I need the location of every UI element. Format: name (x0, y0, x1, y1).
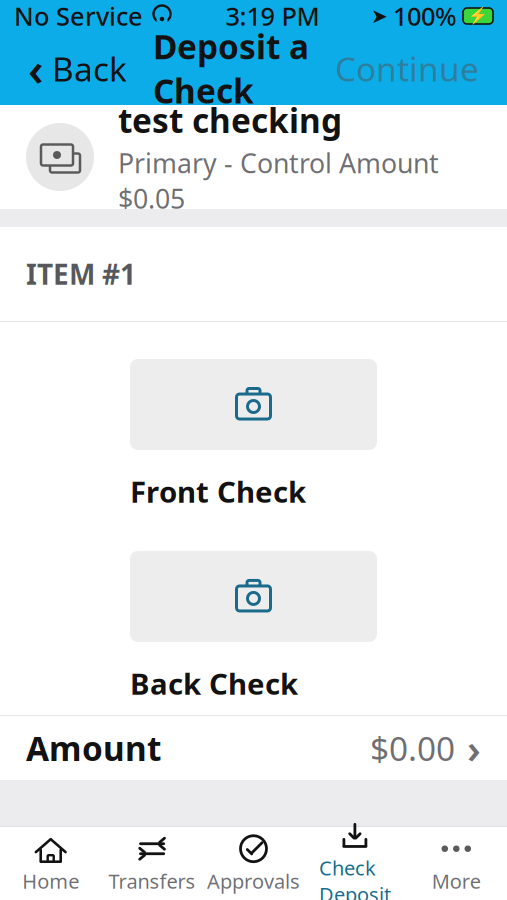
staticText: Deposit a Check (153, 24, 309, 113)
button[interactable]: Home (0, 827, 101, 900)
staticText: test checking (118, 98, 342, 142)
button[interactable]: Amount (0, 716, 507, 780)
staticText: ⚡ (468, 7, 488, 25)
staticText: Home (22, 868, 79, 894)
staticText: No Service (14, 0, 143, 33)
staticText: Back (52, 46, 127, 91)
staticText: Primary - Control Amount $0.05 (118, 145, 439, 216)
button[interactable]: More (406, 827, 507, 900)
staticText: Approvals (207, 868, 300, 894)
staticText: › (467, 721, 481, 774)
staticText: Continue (335, 46, 479, 91)
staticText: ‹ (28, 38, 44, 99)
button[interactable]: test checking (0, 105, 507, 209)
button[interactable]: Continue (325, 38, 489, 99)
staticText: Front Check (130, 472, 306, 511)
button[interactable]: Capture Front Check (130, 359, 377, 450)
button[interactable]: Check Deposit (304, 813, 406, 900)
staticText: Amount (26, 726, 161, 770)
staticText: ITEM #1 (26, 255, 136, 293)
button[interactable]: Approvals (203, 827, 304, 900)
button[interactable]: Capture Back Check (130, 551, 377, 642)
button[interactable]: Transfers (101, 827, 203, 900)
staticText: Back Check (130, 664, 298, 703)
staticText: Transfers (109, 868, 196, 894)
staticText: $0.00 (370, 726, 455, 770)
staticText: 100% (393, 0, 457, 33)
staticText: More (432, 868, 481, 894)
staticText: ➤ (371, 5, 388, 27)
staticText: 3:19 PM (225, 0, 319, 33)
button[interactable]: ‹ (18, 30, 137, 107)
staticText: Check Deposit (319, 854, 391, 900)
